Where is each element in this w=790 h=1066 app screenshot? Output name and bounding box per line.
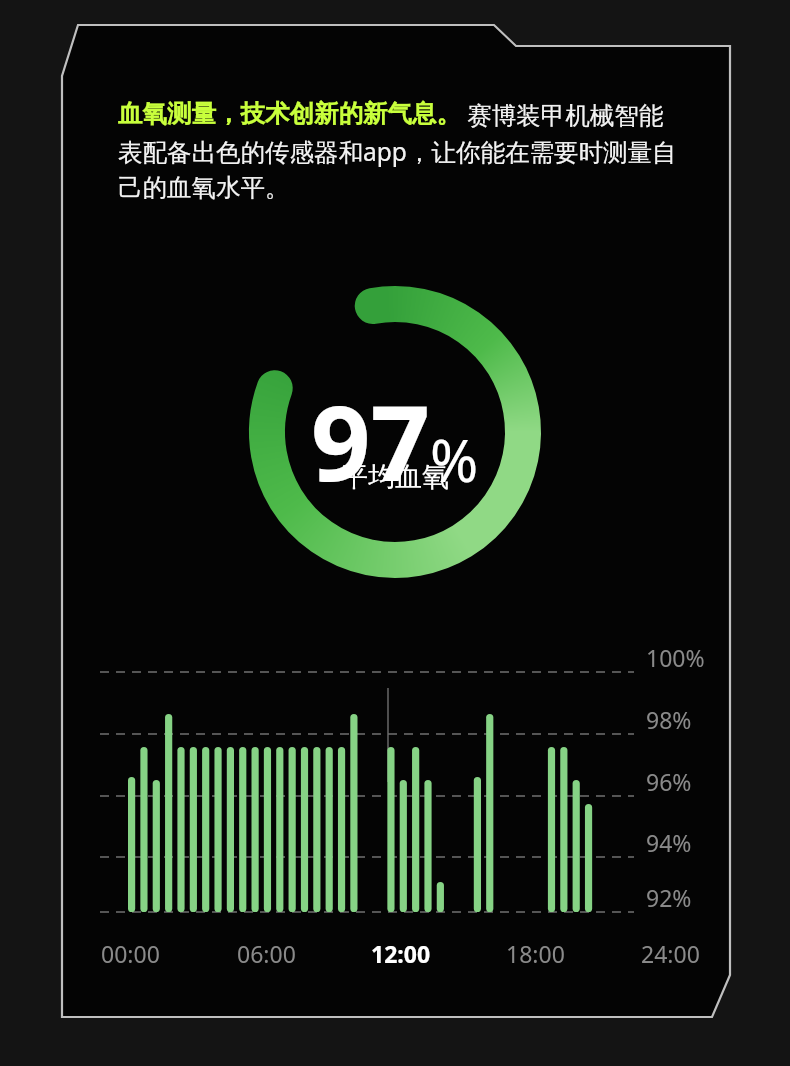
button[interactable]: Blood oxygen measurement panel xyxy=(0,0,790,1066)
